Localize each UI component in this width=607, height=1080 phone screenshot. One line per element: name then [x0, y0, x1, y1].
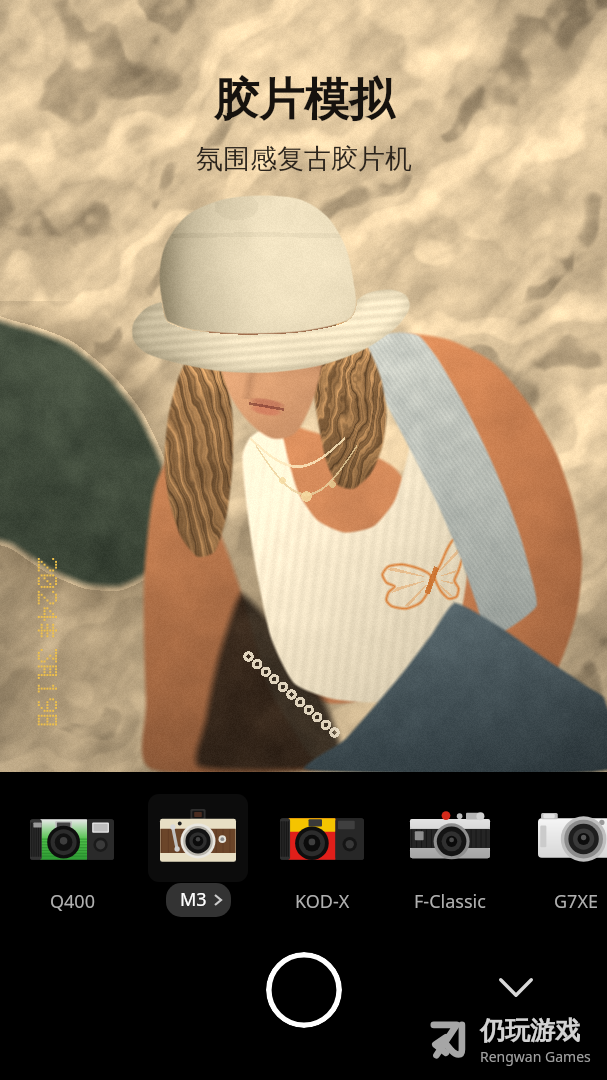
staticText: 氛围感复古胶片机	[196, 142, 412, 176]
button[interactable]: Collapse panel	[484, 969, 548, 1005]
staticText: Rengwan Games	[480, 1047, 591, 1066]
staticText: 仍玩游戏	[480, 1015, 580, 1046]
staticText: KOD-X	[295, 889, 350, 914]
staticText: G7XE	[554, 889, 598, 914]
button[interactable]: F-Classic	[390, 794, 510, 914]
staticText: Q400	[50, 889, 95, 914]
button[interactable]: M3	[138, 794, 258, 917]
button[interactable]: KOD-X	[262, 794, 382, 914]
button[interactable]: Shutter	[266, 952, 342, 1028]
staticText: 胶片模拟	[214, 72, 394, 129]
button[interactable]: G7XE	[516, 794, 607, 914]
staticText: M3	[180, 887, 207, 912]
button[interactable]: Q400	[12, 794, 132, 914]
staticText: F-Classic	[414, 889, 486, 914]
